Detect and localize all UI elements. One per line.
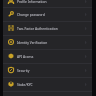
staticText: Change password	[17, 12, 84, 16]
staticText: Identity Verification	[17, 40, 84, 44]
button[interactable]: Stake/KYC	[3, 77, 92, 91]
staticText: Stake/KYC	[17, 82, 84, 86]
button[interactable]: Two-Factor Authentication	[3, 21, 92, 35]
button[interactable]: Change password	[3, 7, 92, 21]
staticText: Profile Information	[17, 0, 84, 3]
staticText: Security	[17, 68, 84, 72]
staticText: API Access	[17, 54, 84, 58]
button[interactable]: API Access	[3, 49, 92, 63]
button[interactable]: Profile Information	[3, 0, 92, 8]
button[interactable]: Identity Verification	[3, 35, 92, 49]
staticText: Two-Factor Authentication	[17, 26, 84, 30]
button[interactable]: Security	[3, 63, 92, 77]
